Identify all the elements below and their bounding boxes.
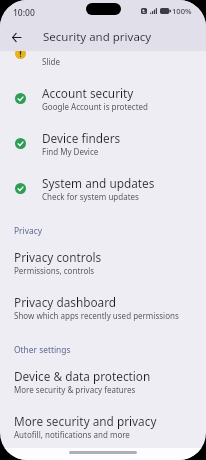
staticText: 100%	[172, 6, 192, 16]
staticText: Account security	[42, 85, 134, 101]
staticText: Device & data protection	[14, 368, 151, 384]
staticText: Check for system updates	[42, 191, 139, 202]
staticText: Privacy controls	[14, 249, 102, 265]
staticText: Other settings	[14, 344, 71, 355]
staticText: Security and privacy	[43, 29, 152, 45]
button[interactable]: More security and privacy	[0, 404, 206, 449]
staticText: Show which apps recently used permission…	[14, 310, 179, 321]
staticText: Privacy dashboard	[14, 294, 117, 310]
staticText: Google Account is protected	[42, 101, 149, 112]
button[interactable]: Slide to unlock	[0, 51, 206, 76]
button[interactable]: Privacy dashboard	[0, 285, 206, 330]
staticText: Privacy	[14, 225, 42, 236]
staticText: More security & privacy features	[14, 384, 136, 395]
staticText: More security and privacy	[14, 413, 157, 429]
button[interactable]: Device finders	[0, 121, 206, 166]
staticText: Slide	[42, 56, 60, 67]
staticText: Permissions, controls	[14, 265, 95, 276]
staticText: Find My Device	[42, 146, 99, 157]
staticText: Device finders	[42, 130, 121, 146]
button[interactable]: Back	[2, 23, 31, 52]
button[interactable]: Account security	[0, 76, 206, 121]
staticText: System and updates	[42, 175, 155, 191]
button[interactable]: System and updates	[0, 166, 206, 211]
staticText: Autofill, notifications and more	[14, 429, 130, 440]
button[interactable]: Privacy controls	[0, 240, 206, 285]
button[interactable]: Device & data protection	[0, 359, 206, 404]
staticText: 10:00	[13, 7, 35, 19]
